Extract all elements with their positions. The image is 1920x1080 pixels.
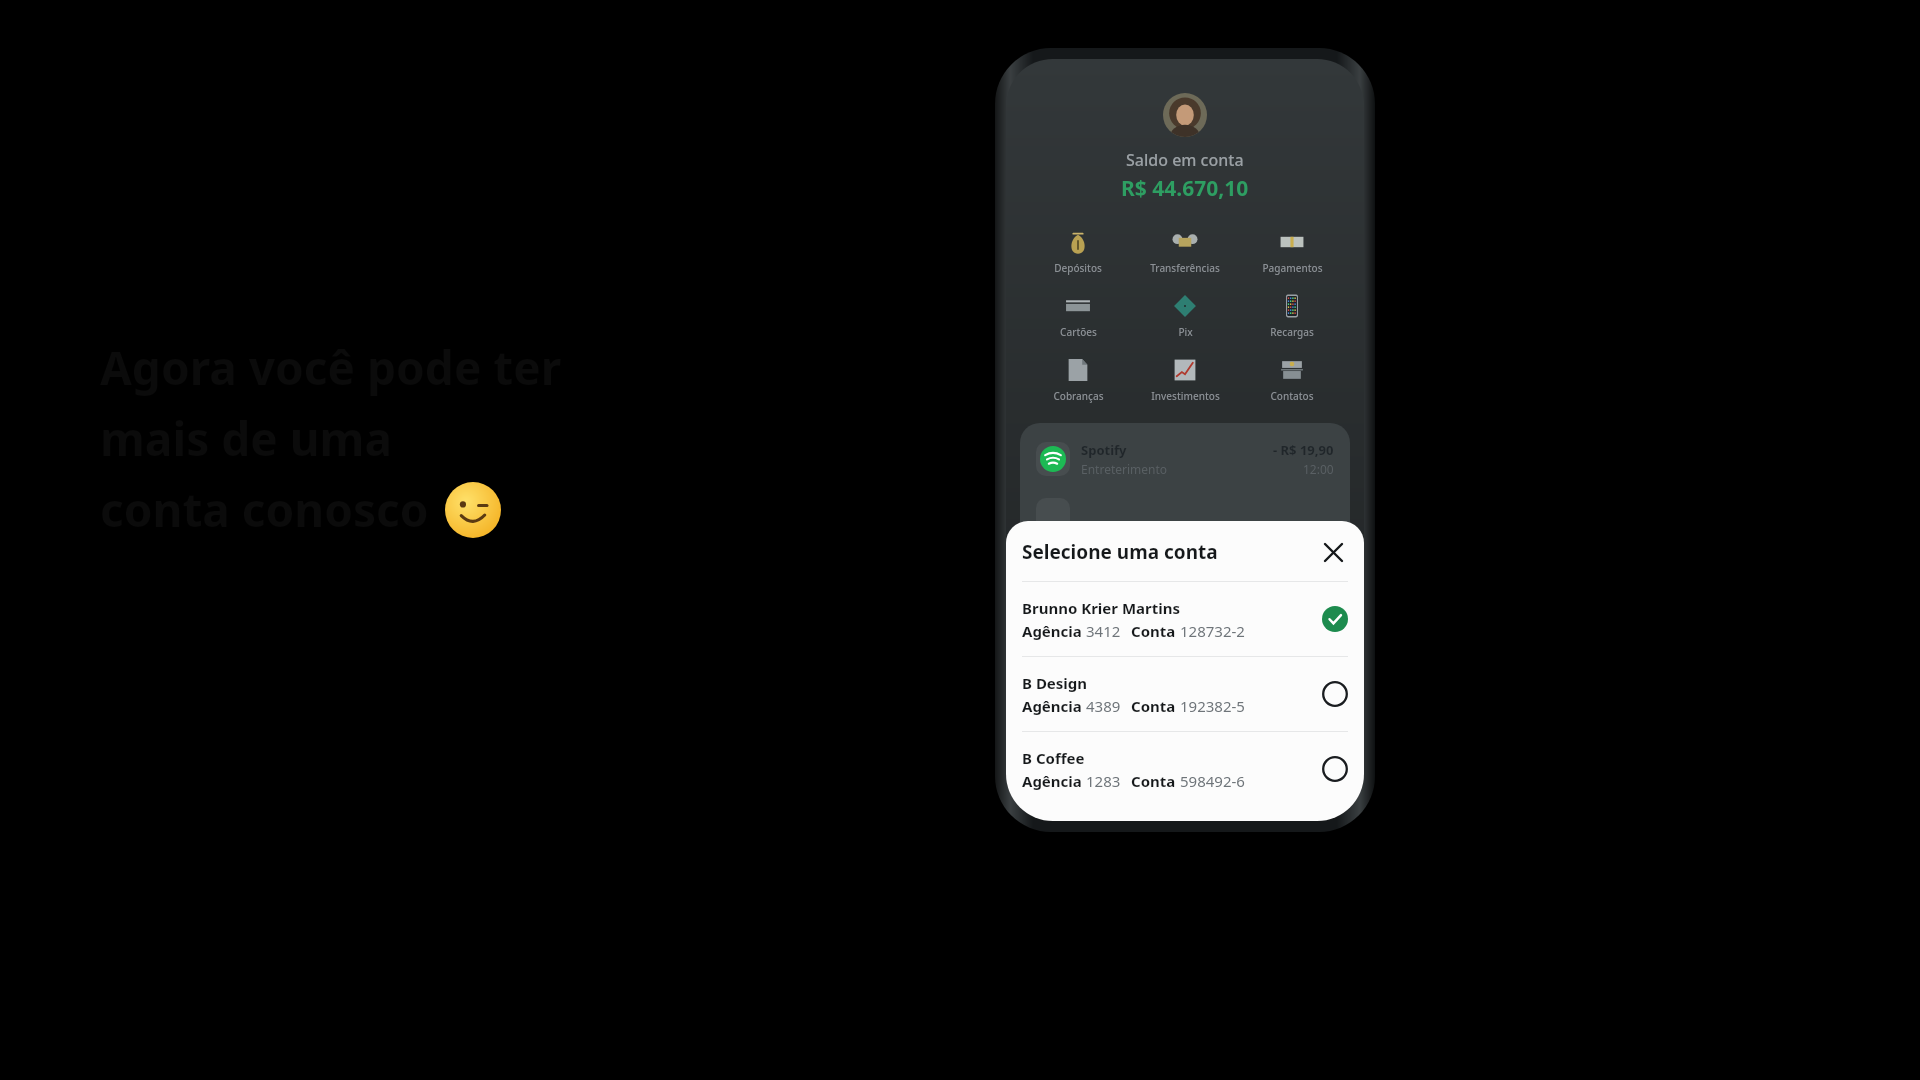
button[interactable]: Cobranças [1029,355,1127,405]
staticText: Conta [1131,771,1180,791]
button[interactable]: Contatos [1243,355,1341,405]
staticText: mais de uma [100,407,393,470]
staticText: Entreterimento [1081,461,1168,477]
staticText: Recargas [1270,325,1314,339]
button[interactable]: Depósitos [1029,227,1127,277]
staticText: Cobranças [1053,389,1104,403]
staticText: 4389 [1086,696,1121,716]
button[interactable]: Transferências [1136,227,1234,277]
staticText: - R$ 19,90 [1273,441,1334,459]
staticText: 192382-5 [1180,696,1245,716]
staticText: Spotify [1081,441,1127,459]
button[interactable]: Investimentos [1136,355,1234,405]
staticText: 598492-6 [1180,771,1245,791]
staticText: Conta [1131,621,1180,641]
staticText: Agora você pode ter [100,336,562,399]
staticText: Pagamentos [1262,261,1323,275]
button[interactable]: Cartões [1029,291,1127,341]
staticText: Investimentos [1151,389,1220,403]
staticText: Agência [1022,621,1086,641]
staticText: Agência [1022,771,1086,791]
other: Selecionada [1322,606,1348,632]
staticText: Saldo em conta [1126,149,1244,171]
staticText: B Coffee [1022,748,1085,768]
staticText: Transferências [1150,261,1220,275]
staticText: Conta [1131,696,1180,716]
staticText: 3412 [1086,621,1121,641]
staticText: Depósitos [1054,261,1102,275]
button[interactable]: Brunno Krier Martins [1006,582,1364,656]
staticText: Contatos [1270,389,1314,403]
button[interactable] [1036,497,1334,533]
other: Selecionar [1322,756,1348,782]
staticText: R$ 44.670,10 [1121,174,1249,203]
staticText: Selecione uma conta [1022,539,1318,565]
staticText: 1283 [1086,771,1121,791]
button[interactable]: Recargas [1243,291,1341,341]
staticText: Cartões [1060,325,1097,339]
staticText: Brunno Krier Martins [1022,598,1181,618]
other: Selecionar [1322,681,1348,707]
button[interactable]: Pagamentos [1243,227,1341,277]
staticText: Agência [1022,696,1086,716]
staticText: 12:00 [1303,461,1334,477]
button[interactable]: Pix [1136,291,1234,341]
staticText: Pix [1178,325,1193,339]
button[interactable]: Fechar [1318,537,1348,567]
staticText: B Design [1022,673,1088,693]
button[interactable]: B Coffee [1006,732,1364,806]
button[interactable]: Perfil [1163,93,1207,137]
button[interactable]: Spotify [1036,441,1334,477]
button[interactable]: B Design [1006,657,1364,731]
staticText: 128732-2 [1180,621,1245,641]
staticText: conta conosco [100,478,429,541]
